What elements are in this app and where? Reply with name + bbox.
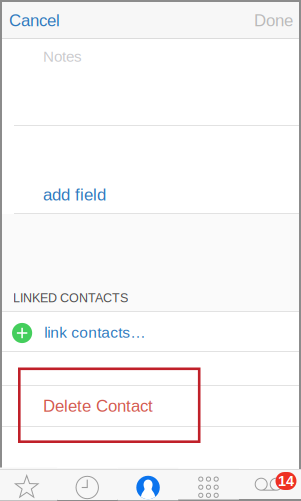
button[interactable]: add field (2, 126, 299, 213)
staticText: Delete Contact (43, 397, 153, 415)
staticText: link contacts… (44, 324, 145, 341)
button[interactable]: Voicemail (239, 469, 301, 499)
button[interactable]: Cancel (2, 2, 70, 39)
button[interactable]: Contacts (118, 468, 178, 500)
button[interactable]: Done (244, 2, 299, 39)
button[interactable]: Delete Contact (2, 386, 299, 426)
staticText: 14 (278, 473, 294, 489)
staticText: Notes (43, 48, 82, 65)
staticText: add field (43, 185, 106, 204)
staticText: Done (254, 11, 293, 30)
button[interactable]: link contacts… (2, 312, 299, 351)
button[interactable]: Keypad (178, 468, 239, 499)
staticText: Cancel (9, 11, 60, 30)
button[interactable]: Favorites (0, 467, 57, 500)
staticText: LINKED CONTACTS (13, 291, 128, 305)
button[interactable]: Recents (57, 468, 118, 500)
